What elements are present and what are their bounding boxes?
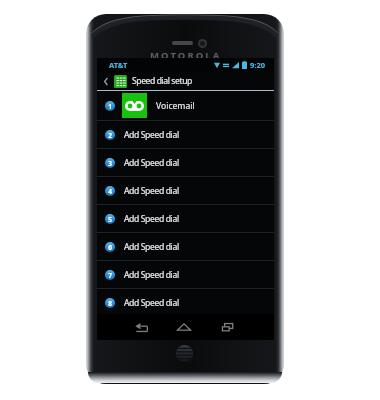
staticText: Add Speed dial (124, 269, 179, 281)
button[interactable]: 1 (97, 91, 274, 120)
staticText: Add Speed dial (124, 241, 179, 253)
staticText: AT&T (109, 60, 128, 70)
staticText: Add Speed dial (124, 129, 179, 141)
staticText: Add Speed dial (124, 157, 179, 169)
button[interactable]: 5 (97, 205, 274, 232)
button[interactable]: 3 (97, 149, 274, 176)
button[interactable]: Speed dial setup (97, 72, 274, 90)
staticText: 1 (108, 102, 112, 111)
staticText: 2 (108, 131, 112, 140)
staticText: 8 (108, 299, 112, 308)
button[interactable]: 4 (97, 177, 274, 204)
staticText: 3 (108, 159, 112, 168)
staticText: 7 (108, 271, 112, 280)
staticText: 5 (108, 215, 112, 224)
staticText: 6 (108, 243, 112, 252)
staticText: Add Speed dial (124, 213, 179, 225)
button[interactable]: Home (169, 314, 199, 340)
staticText: Voicemail (156, 100, 195, 112)
staticText: Add Speed dial (124, 185, 179, 197)
staticText: 4 (108, 187, 112, 196)
staticText: Speed dial setup (132, 75, 192, 87)
button[interactable]: Back (126, 314, 156, 340)
staticText: 9:20 (250, 60, 265, 70)
staticText: Add Speed dial (124, 297, 179, 309)
button[interactable]: Recent apps (212, 314, 242, 340)
button[interactable]: 7 (97, 261, 274, 288)
button[interactable]: 8 (97, 289, 274, 316)
staticText: MOTOROLA (150, 49, 222, 62)
button[interactable]: 2 (97, 121, 274, 148)
button[interactable]: 6 (97, 233, 274, 260)
